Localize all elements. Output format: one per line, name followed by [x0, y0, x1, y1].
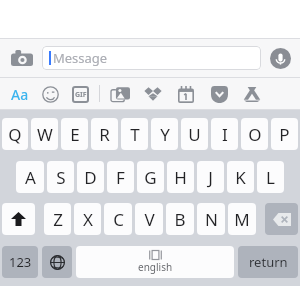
button[interactable]: 123	[2, 246, 38, 278]
button[interactable]: U	[181, 118, 208, 150]
staticText: P	[279, 123, 290, 146]
button[interactable]: I	[211, 118, 238, 150]
staticText: W	[37, 123, 53, 146]
button[interactable]: F	[107, 161, 134, 193]
button[interactable]: V	[135, 203, 163, 235]
staticText: Z	[53, 208, 63, 231]
staticText: D	[84, 166, 97, 189]
staticText: O	[248, 123, 262, 146]
button[interactable]: Voice message	[268, 46, 292, 70]
staticText: english	[138, 260, 173, 274]
staticText: F	[116, 166, 125, 189]
button[interactable]: Calendar	[173, 81, 199, 107]
staticText: 123	[9, 253, 32, 271]
button[interactable]: A	[16, 161, 44, 193]
staticText: Message	[53, 49, 108, 67]
staticText: L	[266, 166, 275, 189]
button[interactable]: Q	[2, 118, 28, 150]
button[interactable]: Dropbox	[140, 81, 166, 107]
button[interactable]: GIF	[67, 81, 93, 107]
button[interactable]: O	[241, 118, 268, 150]
staticText: Y	[160, 123, 170, 146]
staticText: U	[188, 123, 201, 146]
staticText: X	[83, 208, 93, 231]
staticText: A	[25, 166, 36, 189]
staticText: Q	[8, 123, 22, 146]
button[interactable]: J	[197, 161, 224, 193]
staticText: T	[130, 123, 140, 146]
staticText: C	[113, 208, 124, 231]
button[interactable]: B	[166, 203, 194, 235]
button[interactable]: Z	[44, 203, 71, 235]
staticText: E	[70, 123, 80, 146]
button[interactable]: W	[31, 118, 58, 150]
staticText: M	[234, 208, 250, 231]
staticText: K	[235, 166, 246, 189]
button[interactable]: R	[91, 118, 118, 150]
button[interactable]: P	[271, 118, 298, 150]
staticText: V	[144, 208, 155, 231]
button[interactable]: Photos	[107, 81, 133, 107]
button[interactable]: T	[121, 118, 148, 150]
button[interactable]: Shift	[2, 203, 35, 235]
staticText: R	[99, 123, 110, 146]
button[interactable]: S	[47, 161, 74, 193]
button[interactable]: G	[137, 161, 164, 193]
button[interactable]: Text format	[7, 81, 33, 107]
button[interactable]: Google Drive	[239, 81, 265, 107]
button[interactable]: K	[227, 161, 254, 193]
button[interactable]: N	[197, 203, 225, 235]
button[interactable]: E	[61, 118, 88, 150]
staticText: J	[208, 166, 213, 189]
button[interactable]: L	[257, 161, 284, 193]
button[interactable]: return	[238, 246, 298, 278]
button[interactable]: Message	[42, 46, 261, 70]
staticText: G	[144, 166, 157, 189]
staticText: B	[174, 208, 186, 231]
button[interactable]: english	[76, 246, 234, 278]
button[interactable]: X	[74, 203, 101, 235]
staticText: return	[249, 253, 288, 271]
staticText: GIF	[75, 90, 87, 100]
staticText: I	[222, 123, 228, 146]
button[interactable]: Y	[151, 118, 178, 150]
button[interactable]: Emoji	[37, 81, 63, 107]
button[interactable]: Switch keyboard language	[42, 246, 72, 278]
button[interactable]: H	[167, 161, 194, 193]
button[interactable]: Camera	[8, 44, 36, 72]
button[interactable]: Backspace	[265, 203, 298, 235]
button[interactable]: M	[228, 203, 256, 235]
staticText: N	[205, 208, 218, 231]
button[interactable]: C	[104, 203, 132, 235]
staticText: S	[56, 166, 66, 189]
button[interactable]: Pocket	[206, 81, 232, 107]
staticText: H	[174, 166, 187, 189]
staticText: Aa	[11, 85, 29, 104]
button[interactable]: D	[77, 161, 104, 193]
